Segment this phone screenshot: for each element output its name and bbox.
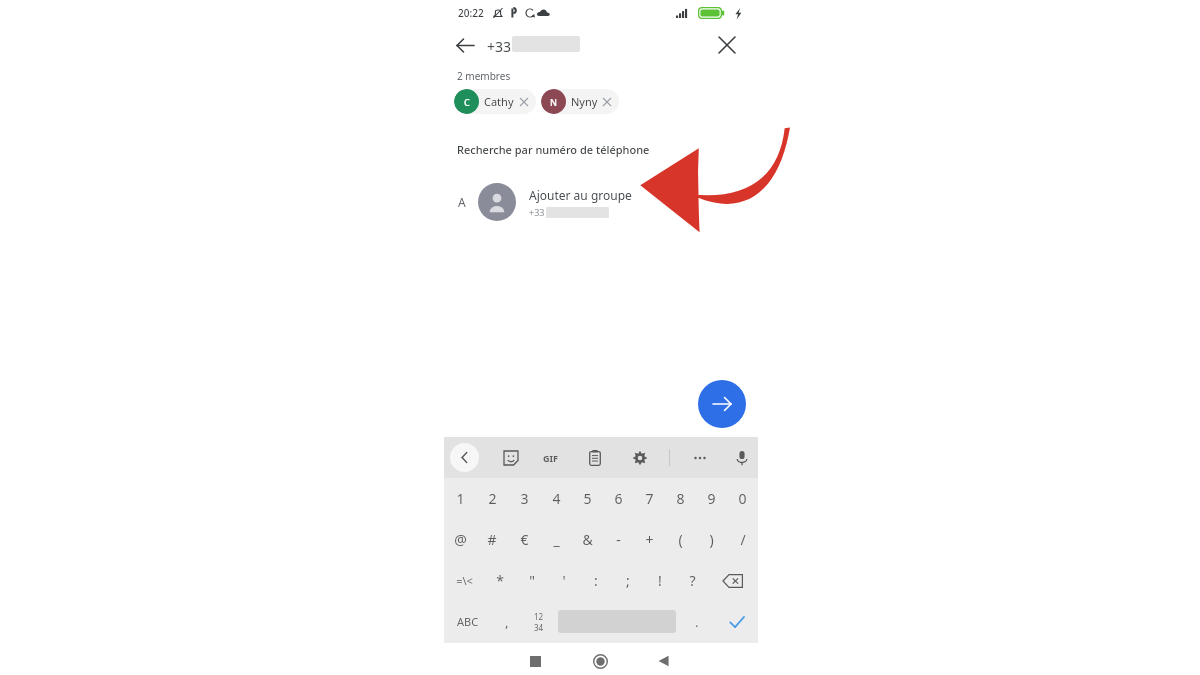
staticText: 6	[614, 489, 623, 508]
button[interactable]: €	[508, 519, 540, 560]
staticText: 20:22	[458, 6, 484, 20]
staticText: :	[594, 571, 598, 590]
staticText: GIF	[543, 452, 558, 464]
staticText: '	[562, 571, 566, 590]
staticText: ;	[626, 571, 630, 590]
staticText: ,	[505, 613, 509, 631]
staticText: (	[678, 530, 683, 549]
button[interactable]: GIF	[536, 443, 565, 472]
button[interactable]: Accueil	[589, 650, 611, 672]
staticText: +	[645, 530, 654, 549]
staticText: 2 membres	[457, 69, 511, 83]
staticText: &	[582, 530, 593, 549]
button[interactable]: Outil clavier	[685, 443, 714, 472]
staticText: 4	[552, 489, 561, 508]
button[interactable]: =\<	[444, 560, 484, 601]
staticText: 0	[738, 489, 747, 508]
button[interactable]: !	[644, 560, 676, 601]
button[interactable]: Chiffres	[522, 601, 556, 642]
button[interactable]: Retour	[653, 650, 675, 672]
staticText: 1	[456, 489, 465, 508]
staticText: 34	[534, 622, 544, 633]
button[interactable]: Retour clavier	[450, 443, 479, 472]
button[interactable]: 6	[603, 478, 634, 519]
button[interactable]: ,	[492, 601, 522, 642]
staticText: A	[458, 194, 466, 210]
staticText: _	[553, 530, 560, 549]
staticText: 8	[676, 489, 685, 508]
button[interactable]: :	[580, 560, 612, 601]
staticText: *	[496, 571, 504, 590]
button[interactable]: 1	[444, 478, 476, 519]
staticText: #	[487, 530, 497, 549]
button[interactable]: 4	[540, 478, 572, 519]
button[interactable]: Valider	[715, 601, 758, 642]
staticText: 9	[707, 489, 716, 508]
button[interactable]: Récents	[524, 650, 546, 672]
button[interactable]: 7	[634, 478, 665, 519]
button[interactable]: 0	[727, 478, 758, 519]
staticText: 5	[583, 489, 592, 508]
staticText: N	[550, 96, 557, 108]
staticText: )	[709, 530, 714, 549]
button[interactable]: +	[634, 519, 665, 560]
button[interactable]: #	[476, 519, 508, 560]
staticText: 3	[520, 489, 529, 508]
button[interactable]: 8	[665, 478, 696, 519]
button[interactable]: (	[665, 519, 696, 560]
button[interactable]: )	[696, 519, 727, 560]
button[interactable]: .	[678, 601, 715, 642]
button[interactable]: -	[603, 519, 634, 560]
button[interactable]: &	[572, 519, 603, 560]
staticText: Ajouter au groupe	[529, 187, 632, 203]
button[interactable]: Outil clavier	[580, 443, 609, 472]
staticText: 12	[534, 611, 544, 622]
staticText: .	[695, 613, 699, 631]
button[interactable]: Suivant	[698, 380, 746, 428]
staticText: +33	[487, 37, 512, 56]
button[interactable]: @	[444, 519, 476, 560]
button[interactable]: ;	[612, 560, 644, 601]
button[interactable]: *	[484, 560, 516, 601]
staticText: ABC	[457, 614, 479, 629]
staticText: "	[529, 571, 535, 590]
button[interactable]: Outil clavier	[625, 443, 654, 472]
button[interactable]: Retour	[450, 30, 480, 60]
button[interactable]: 2	[476, 478, 508, 519]
staticText: C	[464, 96, 470, 108]
staticText: Nyny	[571, 94, 598, 109]
staticText: +33	[529, 206, 545, 218]
staticText: -	[616, 530, 621, 549]
staticText: Recherche par numéro de téléphone	[457, 142, 650, 157]
staticText: @	[454, 530, 467, 549]
button[interactable]: 9	[696, 478, 727, 519]
button[interactable]: ?	[676, 560, 708, 601]
button[interactable]: "	[516, 560, 548, 601]
staticText: /	[740, 530, 746, 549]
button[interactable]: Fermer	[712, 30, 742, 60]
staticText: ?	[689, 571, 696, 590]
button[interactable]: /	[727, 519, 758, 560]
staticText: =\<	[456, 573, 473, 588]
button[interactable]: C	[454, 89, 536, 114]
button[interactable]: Supprimer	[708, 560, 758, 601]
button[interactable]: 3	[508, 478, 540, 519]
staticText: !	[658, 571, 662, 590]
button[interactable]: 5	[572, 478, 603, 519]
staticText: €	[520, 530, 529, 549]
staticText: 7	[645, 489, 654, 508]
button[interactable]: _	[540, 519, 572, 560]
button[interactable]: A	[444, 175, 758, 229]
button[interactable]: '	[548, 560, 580, 601]
staticText: Cathy	[484, 94, 514, 109]
button[interactable]: ABC	[444, 601, 492, 642]
button[interactable]: Outil clavier	[496, 443, 525, 472]
button[interactable]: N	[541, 89, 619, 114]
button[interactable]: Outil clavier	[727, 443, 756, 472]
staticText: 2	[488, 489, 497, 508]
